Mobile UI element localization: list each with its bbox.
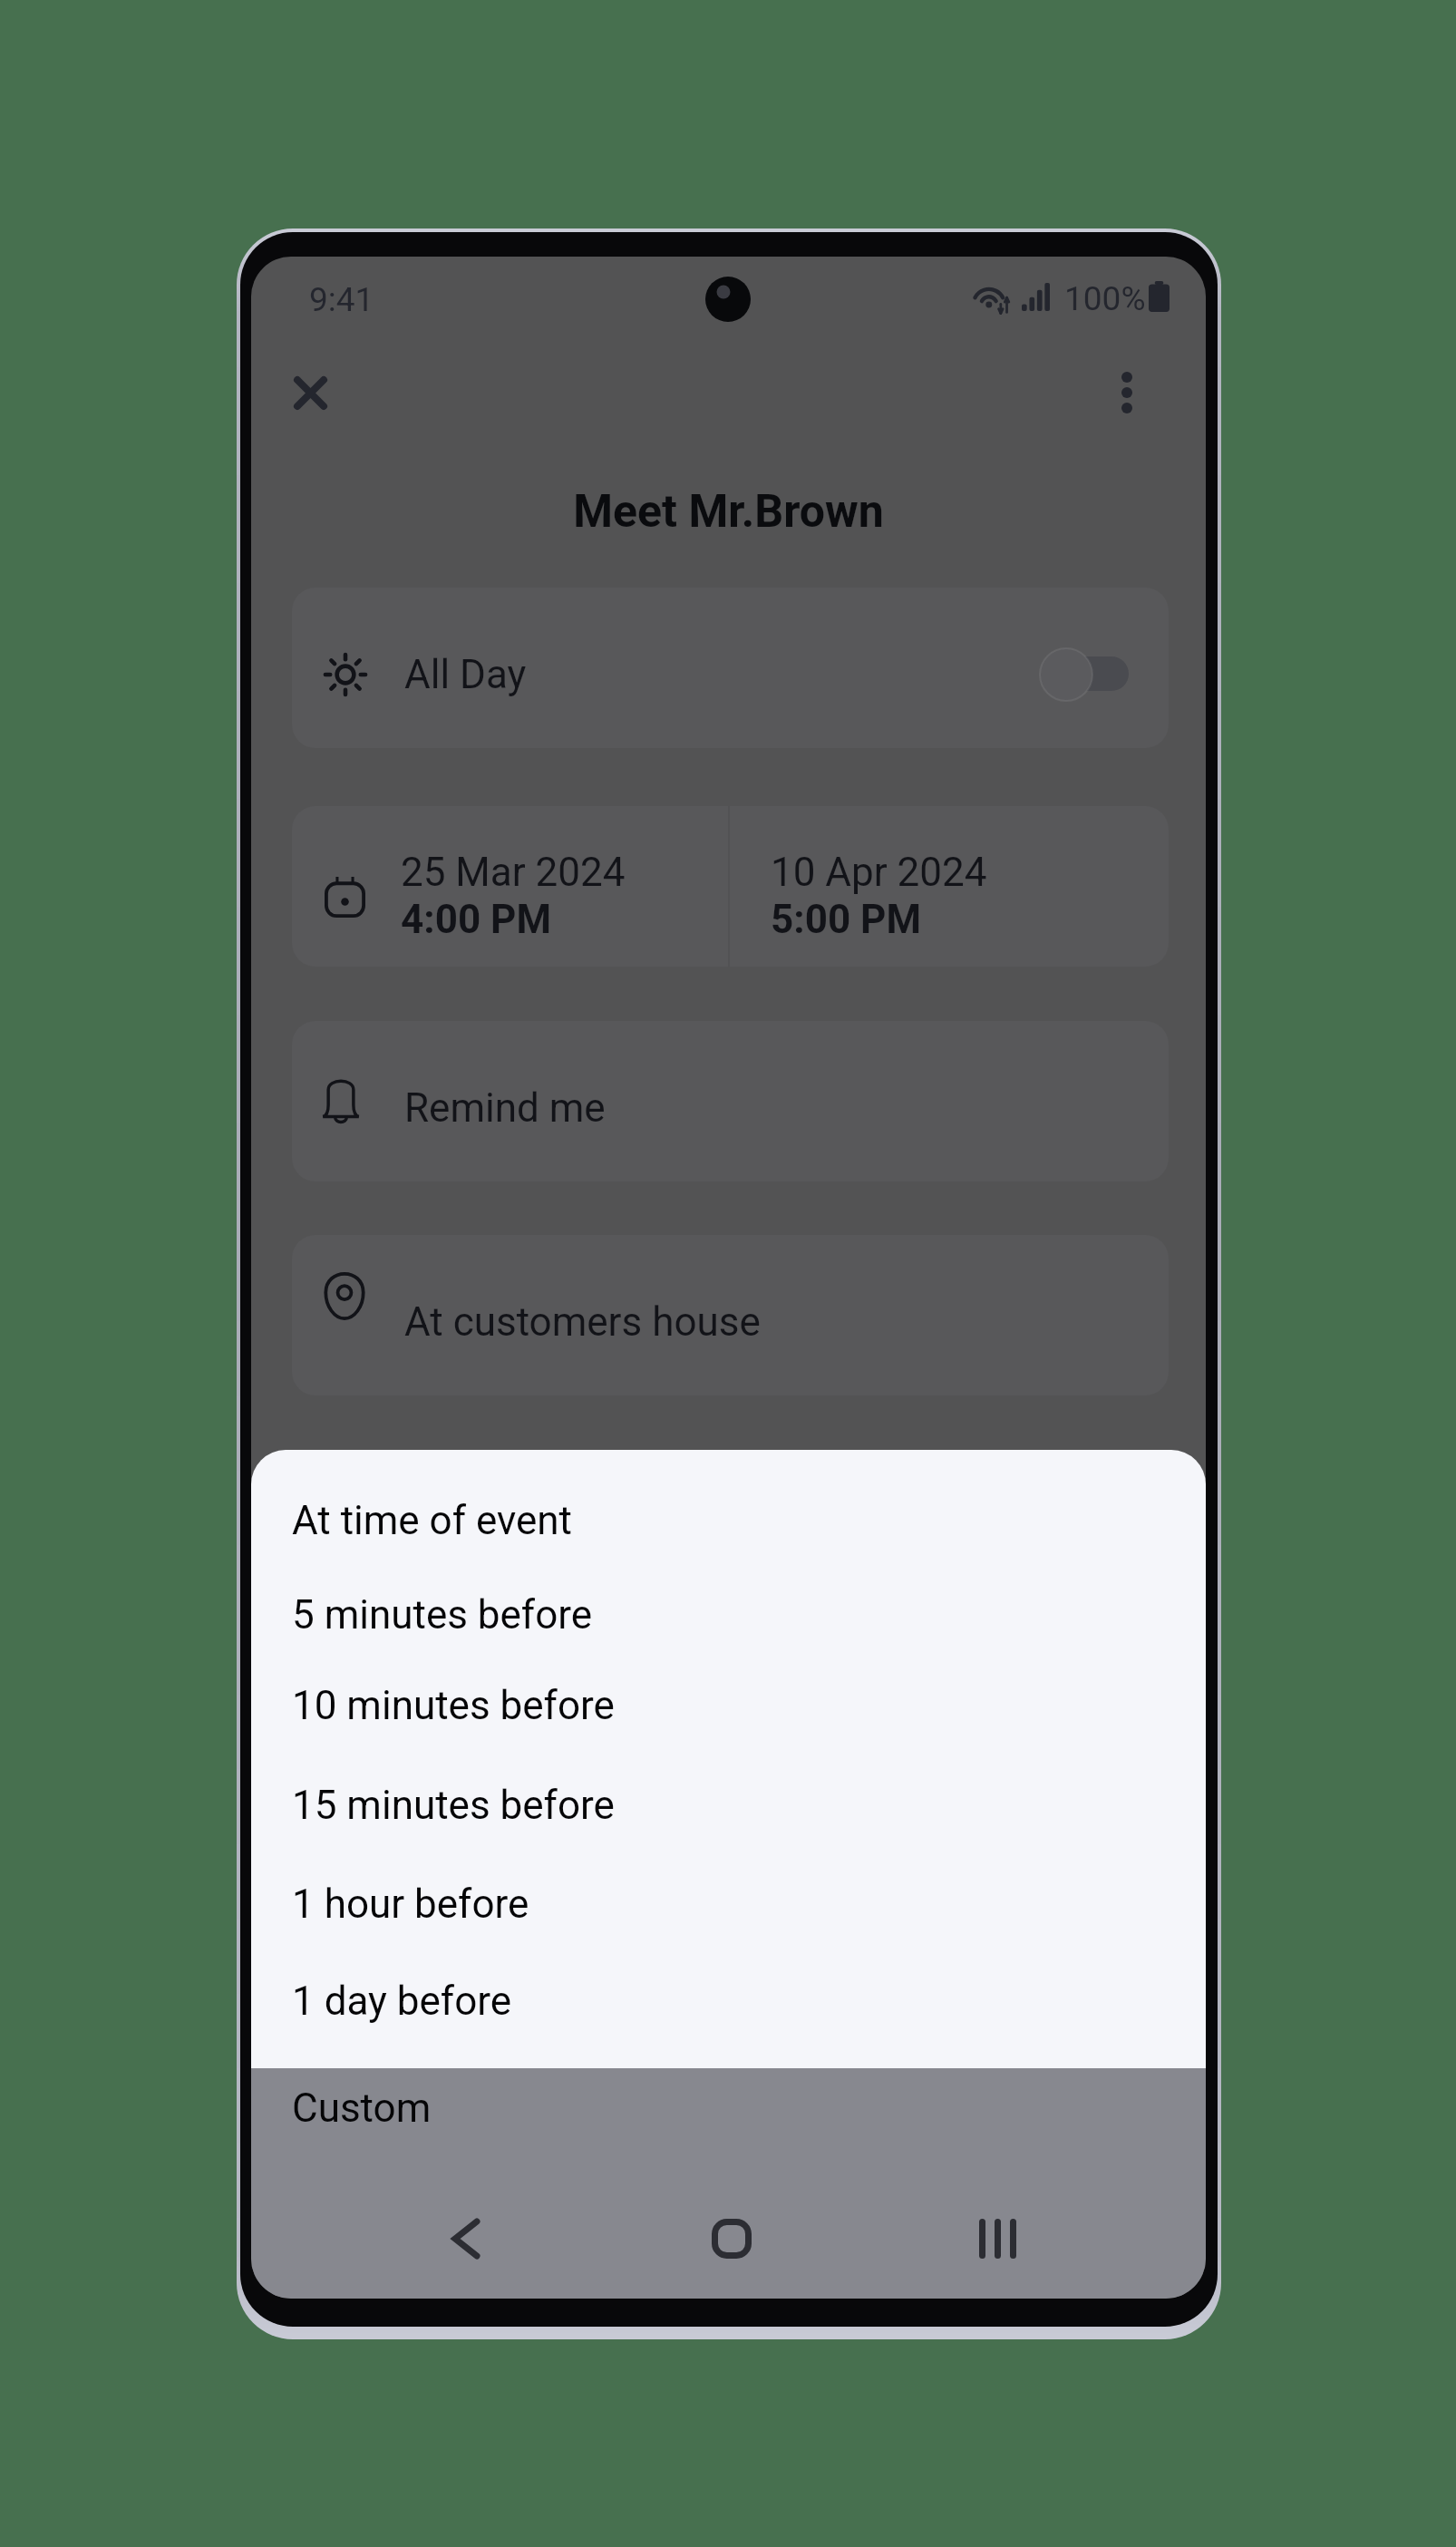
staticText: 15 minutes before: [292, 1782, 615, 1829]
staticText: All Day: [404, 651, 527, 698]
button[interactable]: 5 minutes before: [251, 1567, 1206, 1663]
staticText: 1 hour before: [292, 1881, 529, 1928]
button[interactable]: 1 day before: [251, 1953, 1206, 2049]
staticText: 25 Mar 2024: [401, 849, 626, 896]
button[interactable]: [292, 806, 728, 967]
staticText: At time of event: [292, 1497, 572, 1544]
staticText: 4:00 PM: [401, 896, 551, 943]
staticText: 10 Apr 2024: [771, 849, 987, 896]
button[interactable]: At time of event: [251, 1473, 1206, 1569]
button[interactable]: More options: [1077, 343, 1177, 442]
button[interactable]: Custom: [251, 2068, 1206, 2185]
staticText: Remind me: [404, 1084, 606, 1132]
button[interactable]: Back: [416, 2189, 516, 2289]
staticText: 9:41: [309, 280, 374, 319]
button[interactable]: [730, 806, 1169, 967]
button[interactable]: All Day: [292, 588, 1169, 748]
button[interactable]: Home: [682, 2189, 781, 2289]
staticText: At customers house: [404, 1298, 761, 1346]
button[interactable]: At customers house: [292, 1235, 1169, 1395]
button[interactable]: All Day, off: [1035, 644, 1141, 707]
button[interactable]: Remind me: [292, 1021, 1169, 1181]
staticText: Custom: [292, 2085, 432, 2132]
staticText: 100%: [1064, 279, 1146, 318]
button[interactable]: 15 minutes before: [251, 1757, 1206, 1853]
staticText: 5 minutes before: [292, 1591, 593, 1638]
staticText: Meet Mr.Brown: [251, 485, 1206, 539]
staticText: 10 minutes before: [292, 1682, 615, 1729]
staticText: 1 day before: [292, 1978, 512, 2025]
button[interactable]: Recent apps: [947, 2189, 1047, 2289]
button[interactable]: 10 minutes before: [251, 1657, 1206, 1754]
button[interactable]: Close: [260, 343, 360, 442]
staticText: 5:00 PM: [771, 896, 921, 943]
button[interactable]: 1 hour before: [251, 1856, 1206, 1952]
